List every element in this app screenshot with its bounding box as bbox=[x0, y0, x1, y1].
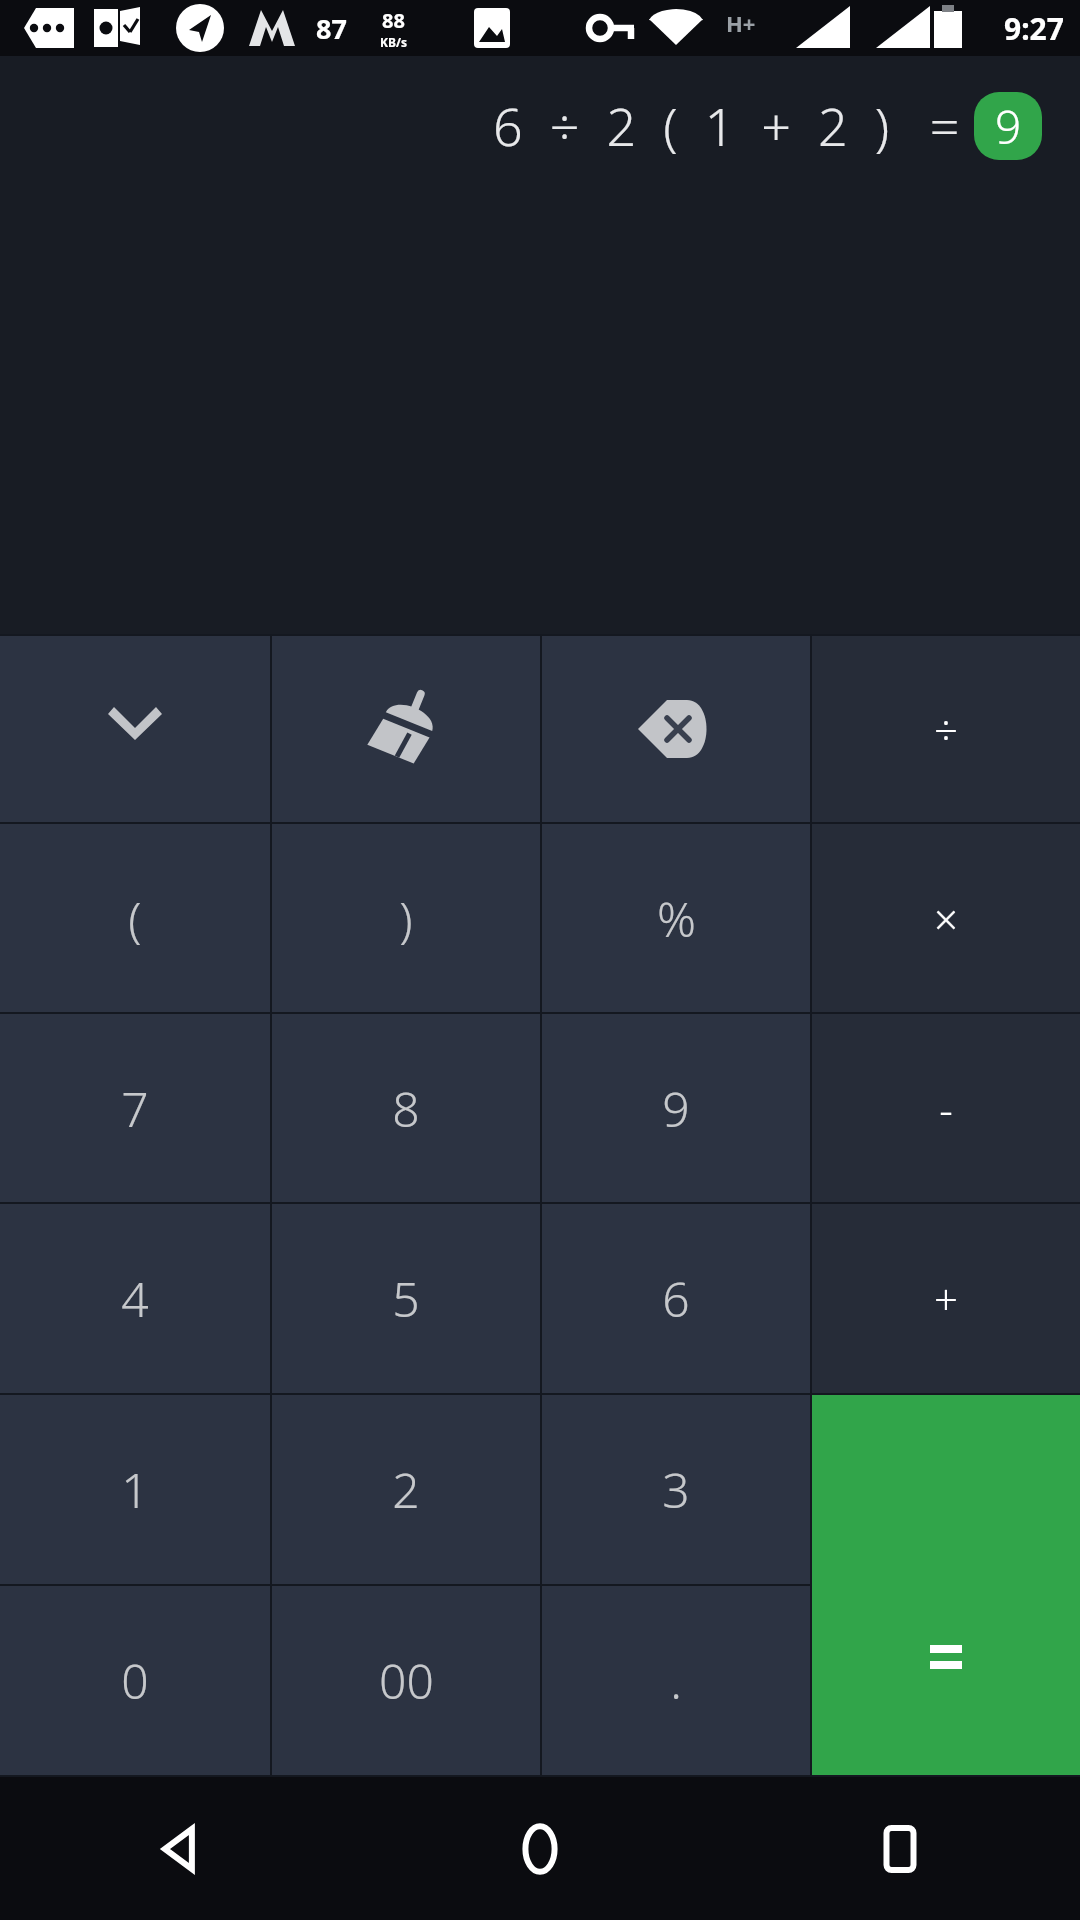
button[interactable]: % bbox=[542, 824, 810, 1012]
staticText: 9 bbox=[662, 1076, 690, 1141]
staticText: 1 bbox=[121, 1457, 149, 1522]
button[interactable]: Clear all bbox=[272, 636, 540, 822]
staticText: ( bbox=[128, 886, 142, 951]
staticText: 9:27 bbox=[1004, 8, 1064, 49]
button[interactable]: 0 bbox=[0, 1586, 270, 1775]
button[interactable]: 7 bbox=[0, 1014, 270, 1202]
button[interactable]: 4 bbox=[0, 1204, 270, 1393]
staticText: . bbox=[670, 1648, 682, 1713]
button[interactable]: Back bbox=[0, 1777, 360, 1920]
staticText: 6 ÷ 2 ( 1 + 2 ) = bbox=[493, 90, 960, 161]
staticText: - bbox=[939, 1080, 953, 1137]
staticText: 3 bbox=[662, 1457, 690, 1522]
staticText: 2 bbox=[392, 1457, 420, 1522]
button[interactable]: ( bbox=[0, 824, 270, 1012]
button[interactable]: × bbox=[812, 824, 1080, 1012]
staticText: 7 bbox=[121, 1076, 149, 1141]
staticText: 6 bbox=[662, 1266, 690, 1331]
button[interactable]: 1 bbox=[0, 1395, 270, 1584]
staticText: 00 bbox=[379, 1648, 434, 1713]
staticText: 9 bbox=[995, 95, 1022, 158]
button[interactable]: Equals bbox=[812, 1586, 1080, 1775]
staticText: ÷ bbox=[934, 701, 958, 758]
button[interactable]: Backspace bbox=[542, 636, 810, 822]
staticText: + bbox=[934, 1270, 958, 1327]
staticText: 4 bbox=[121, 1266, 149, 1331]
button[interactable]: ÷ bbox=[812, 636, 1080, 822]
button[interactable]: 9 bbox=[542, 1014, 810, 1202]
staticText: KB/s bbox=[380, 34, 407, 50]
button[interactable]: + bbox=[812, 1204, 1080, 1393]
button[interactable]: Collapse keypad bbox=[0, 636, 270, 822]
staticText: 0 bbox=[121, 1648, 149, 1713]
button[interactable]: ) bbox=[272, 824, 540, 1012]
staticText: % bbox=[657, 886, 696, 951]
button[interactable]: 8 bbox=[272, 1014, 540, 1202]
button[interactable]: 2 bbox=[272, 1395, 540, 1584]
staticText: 8 bbox=[392, 1076, 420, 1141]
staticText: ) bbox=[399, 886, 413, 951]
button[interactable]: Recent apps bbox=[720, 1777, 1080, 1920]
button[interactable]: Home bbox=[360, 1777, 720, 1920]
staticText: 5 bbox=[392, 1266, 420, 1331]
button[interactable]: 5 bbox=[272, 1204, 540, 1393]
staticText: H+ bbox=[726, 8, 756, 38]
button[interactable]: - bbox=[812, 1014, 1080, 1202]
button[interactable]: 00 bbox=[272, 1586, 540, 1775]
staticText: × bbox=[934, 890, 958, 947]
staticText: 87 bbox=[316, 10, 347, 47]
staticText: 88 bbox=[382, 7, 405, 34]
button[interactable]: 3 bbox=[542, 1395, 810, 1584]
button[interactable]: 6 bbox=[542, 1204, 810, 1393]
